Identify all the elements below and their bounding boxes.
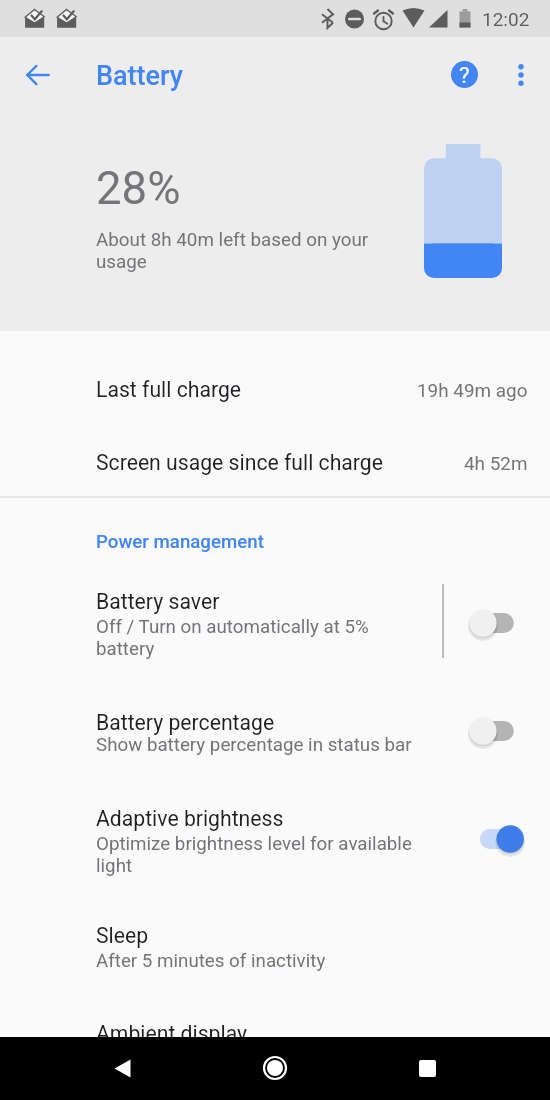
button[interactable]: Adaptive brightness [460, 811, 536, 867]
staticText: 19h 49m ago [417, 379, 528, 401]
button[interactable]: Home [247, 1040, 303, 1096]
staticText: ? [459, 62, 470, 88]
button[interactable]: Adaptive brightness [0, 789, 550, 899]
staticText: Battery percentage [96, 710, 275, 735]
staticText: 4h 52m [464, 452, 528, 474]
button[interactable]: Sleep [0, 906, 550, 994]
staticText: Battery [96, 60, 184, 92]
staticText: 28% [96, 162, 181, 215]
staticText: 12:02 [482, 8, 530, 30]
button[interactable]: Battery percentage [0, 693, 550, 781]
staticText: Show battery percentage in status bar [96, 734, 412, 756]
button[interactable]: Battery percentage [460, 703, 536, 759]
staticText: Optimize brightness level for available … [96, 833, 412, 877]
staticText: Off / Turn on automatically at 5% batter… [96, 616, 369, 660]
staticText: Last full charge [96, 377, 242, 402]
button[interactable]: Help [444, 54, 485, 95]
button[interactable]: More options [500, 54, 541, 95]
staticText: Sleep [96, 923, 149, 948]
staticText: Battery saver [96, 589, 220, 614]
staticText: About 8h 40m left based on your usage [96, 229, 369, 273]
staticText: After 5 minutes of inactivity [96, 950, 326, 972]
button[interactable]: Ambient display [0, 993, 550, 1037]
staticText: Power management [96, 531, 264, 553]
staticText: Adaptive brightness [96, 806, 284, 831]
button[interactable]: Recent apps [399, 1040, 455, 1096]
staticText: Ambient display [96, 1021, 248, 1046]
button[interactable]: Last full charge [0, 352, 550, 424]
button[interactable]: Back [95, 1040, 151, 1096]
button[interactable]: Battery saver [0, 572, 550, 682]
button[interactable]: Back [16, 53, 60, 97]
button[interactable]: Screen usage since full charge [0, 424, 550, 496]
button[interactable]: Battery saver [460, 595, 536, 651]
staticText: Screen usage since full charge [96, 450, 383, 475]
